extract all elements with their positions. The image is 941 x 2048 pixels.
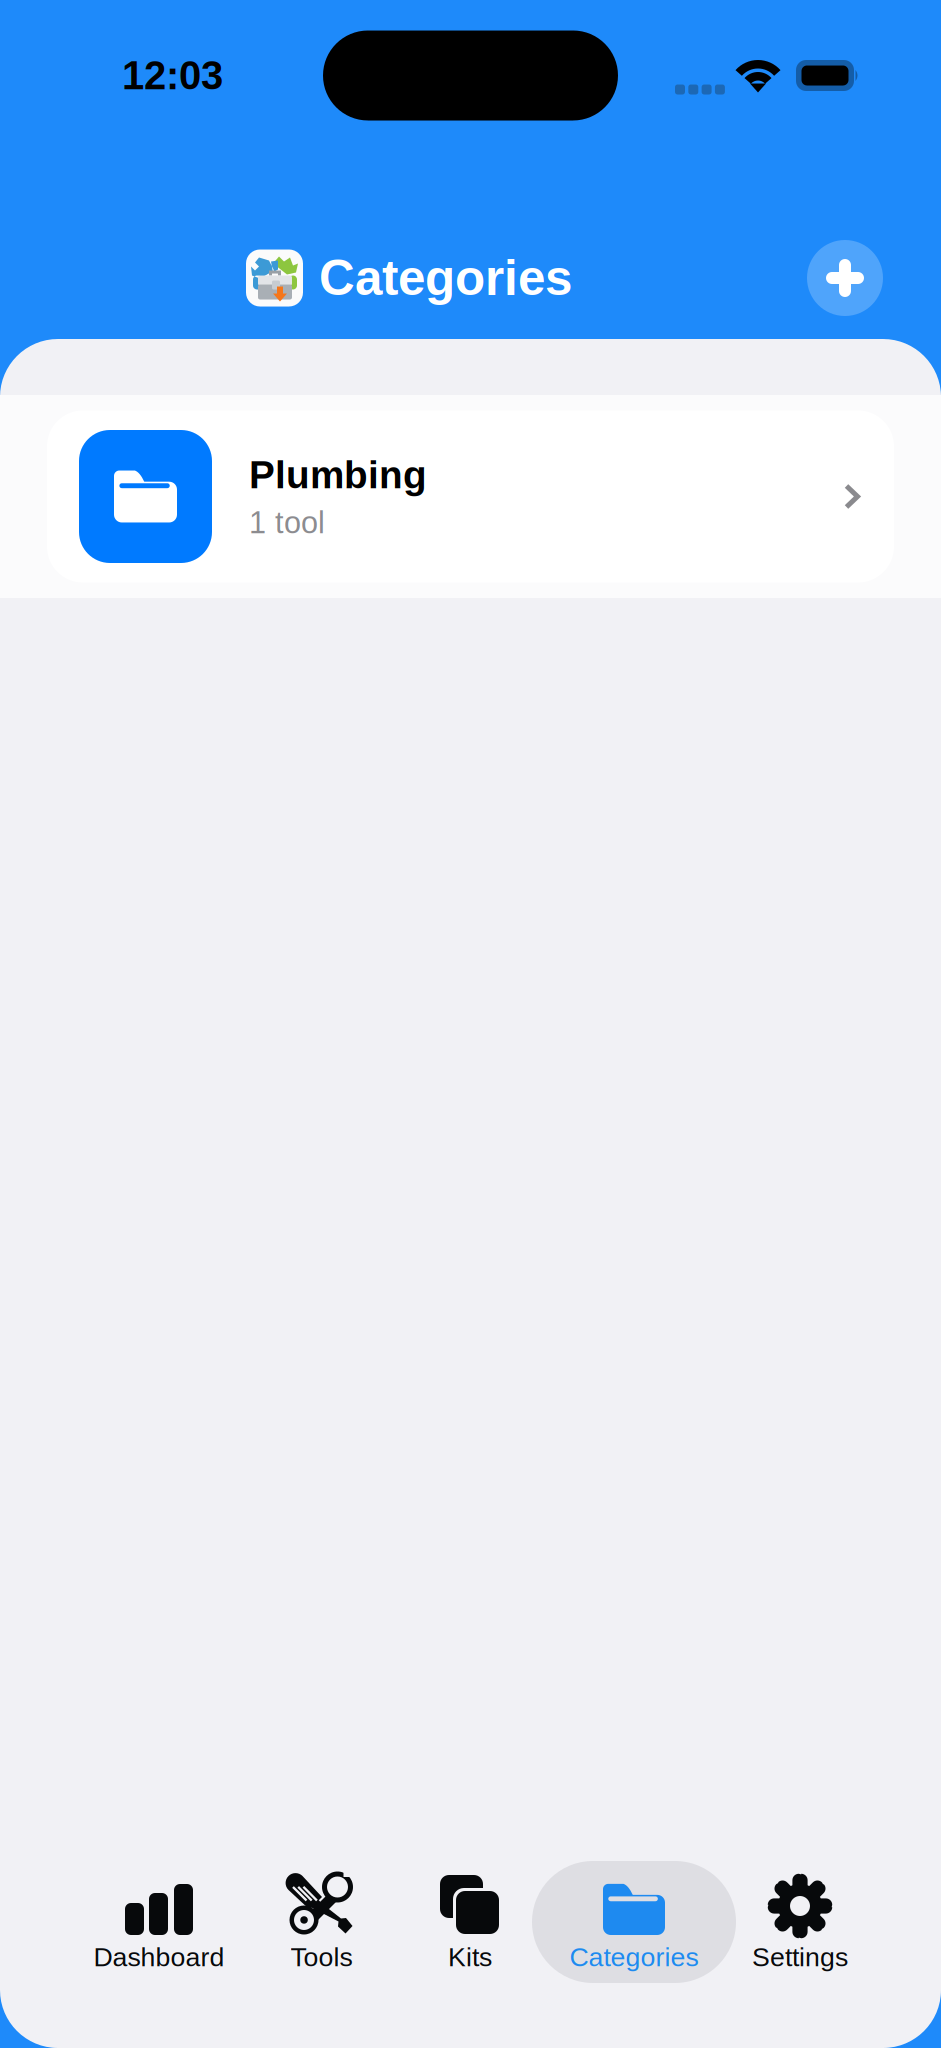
staticText: Categories (319, 250, 572, 305)
staticText: Plumbing (249, 453, 427, 496)
staticText: Kits (448, 1942, 492, 1972)
button[interactable]: Tools (270, 1861, 373, 1983)
staticText: Dashboard (93, 1942, 224, 1972)
button[interactable]: Kits (424, 1861, 516, 1983)
staticText: Categories (569, 1942, 698, 1972)
staticText: 12:03 (122, 53, 223, 98)
button[interactable]: Add category (807, 240, 883, 316)
staticText: 1 tool (249, 505, 325, 540)
button[interactable]: Dashboard (79, 1861, 239, 1983)
button[interactable]: Settings (736, 1861, 864, 1983)
button[interactable]: Plumbing (47, 410, 894, 582)
staticText: Tools (290, 1942, 352, 1972)
button[interactable]: Categories (532, 1861, 736, 1983)
staticText: Settings (752, 1942, 848, 1972)
